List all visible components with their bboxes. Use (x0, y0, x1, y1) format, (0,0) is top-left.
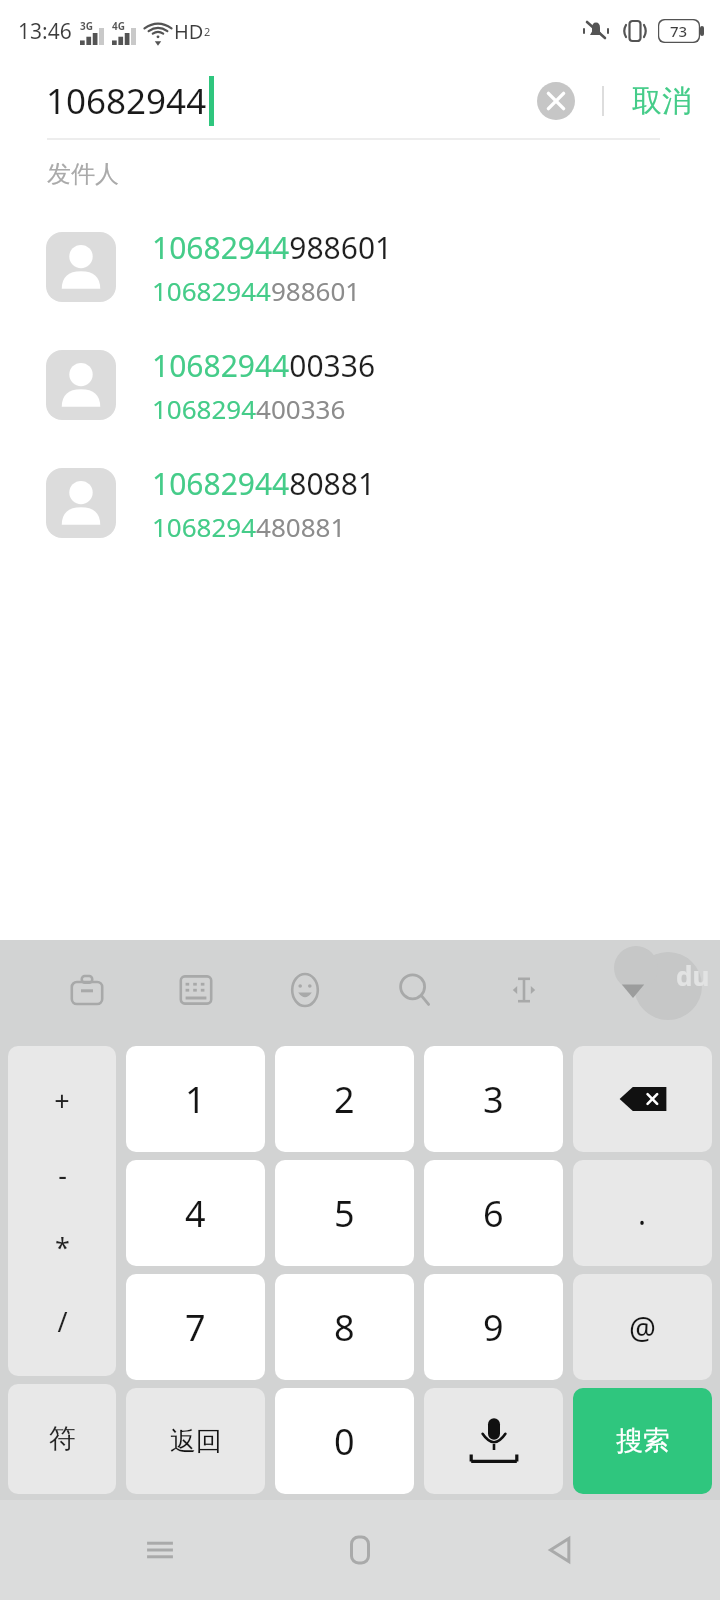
staticText: HD (174, 18, 204, 45)
button[interactable]: 9 (424, 1274, 563, 1380)
staticText: 4 (185, 1189, 206, 1238)
button[interactable]: Keyboard layout (164, 958, 228, 1022)
staticText: du (676, 958, 710, 993)
staticText: 0 (334, 1417, 355, 1466)
staticText: 符 (49, 1422, 76, 1456)
button[interactable]: 10682944988601 (0, 208, 720, 326)
staticText: 4G (112, 19, 125, 33)
staticText: / (57, 1303, 68, 1340)
button[interactable]: 1068294480881 (0, 444, 720, 562)
staticText: 1 (185, 1075, 206, 1124)
button[interactable]: 1068294400336 (0, 326, 720, 444)
button[interactable]: + (8, 1046, 116, 1376)
staticText: 发件人 (47, 159, 119, 189)
staticText: 7 (185, 1303, 206, 1352)
staticText: @ (629, 1307, 656, 1348)
staticText: 13:46 (18, 17, 72, 46)
staticText: - (58, 1156, 67, 1193)
staticText: 10682944 (46, 77, 207, 125)
staticText: 5 (334, 1189, 355, 1238)
button[interactable]: . (573, 1160, 712, 1266)
button[interactable]: 2 (275, 1046, 414, 1152)
button[interactable]: Home (320, 1510, 400, 1590)
button[interactable]: 返回 (126, 1388, 265, 1494)
button[interactable]: Voice input (424, 1388, 563, 1494)
button[interactable]: Recents (120, 1510, 200, 1590)
staticText: 1068294400336 (152, 345, 376, 386)
staticText: 6 (483, 1189, 504, 1238)
button[interactable]: Back (520, 1510, 600, 1590)
button[interactable]: Emoji (273, 958, 337, 1022)
button[interactable]: 搜索 (573, 1388, 712, 1494)
button[interactable]: 8 (275, 1274, 414, 1380)
button[interactable]: Clear (532, 77, 580, 125)
staticText: 8 (334, 1303, 355, 1352)
staticText: 取消 (632, 82, 692, 120)
button[interactable]: 1 (126, 1046, 265, 1152)
button[interactable]: 7 (126, 1274, 265, 1380)
staticText: 1068294480881 (152, 463, 376, 504)
button[interactable]: Hide keyboard (601, 958, 665, 1022)
button[interactable]: @ (573, 1274, 712, 1380)
button[interactable]: Search (383, 958, 447, 1022)
button[interactable]: Backspace (573, 1046, 712, 1152)
button[interactable]: Cursor (492, 958, 556, 1022)
staticText: 3 (483, 1075, 504, 1124)
button[interactable]: 5 (275, 1160, 414, 1266)
staticText: 9 (483, 1303, 504, 1352)
staticText: 1068294480881 (152, 509, 346, 544)
staticText: * (55, 1229, 70, 1266)
button[interactable]: 4 (126, 1160, 265, 1266)
staticText: 73 (670, 21, 688, 41)
staticText: 1068294400336 (152, 391, 346, 426)
button[interactable]: 取消 (628, 74, 696, 128)
button[interactable]: 0 (275, 1388, 414, 1494)
staticText: 10682944988601 (152, 273, 361, 308)
staticText: 返回 (170, 1425, 222, 1458)
staticText: + (54, 1082, 70, 1119)
button[interactable]: Clipboard (55, 958, 119, 1022)
staticText: 3G (80, 19, 93, 33)
button[interactable]: 符 (8, 1384, 116, 1494)
staticText: 2 (334, 1075, 355, 1124)
staticText: 10682944988601 (152, 227, 393, 268)
staticText: . (638, 1193, 647, 1234)
button[interactable]: 6 (424, 1160, 563, 1266)
staticText: 2 (204, 24, 211, 39)
button[interactable]: 3 (424, 1046, 563, 1152)
staticText: 搜索 (616, 1424, 670, 1458)
